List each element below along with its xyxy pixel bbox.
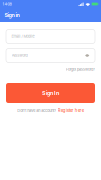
staticText: Don't have an account? xyxy=(17,108,56,113)
staticText: Sign In xyxy=(42,90,59,96)
staticText: Email / Mobile xyxy=(11,34,34,39)
staticText: Register here xyxy=(58,108,84,113)
staticText: 14:08 xyxy=(2,2,11,6)
staticText: Sign in xyxy=(4,12,19,18)
button[interactable]: Sign In xyxy=(6,83,95,103)
staticText: Password xyxy=(11,53,27,58)
staticText: Forgot password? xyxy=(66,67,95,72)
button[interactable]: Don't have an account? xyxy=(6,108,95,113)
button[interactable]: Forgot password? xyxy=(6,67,95,72)
